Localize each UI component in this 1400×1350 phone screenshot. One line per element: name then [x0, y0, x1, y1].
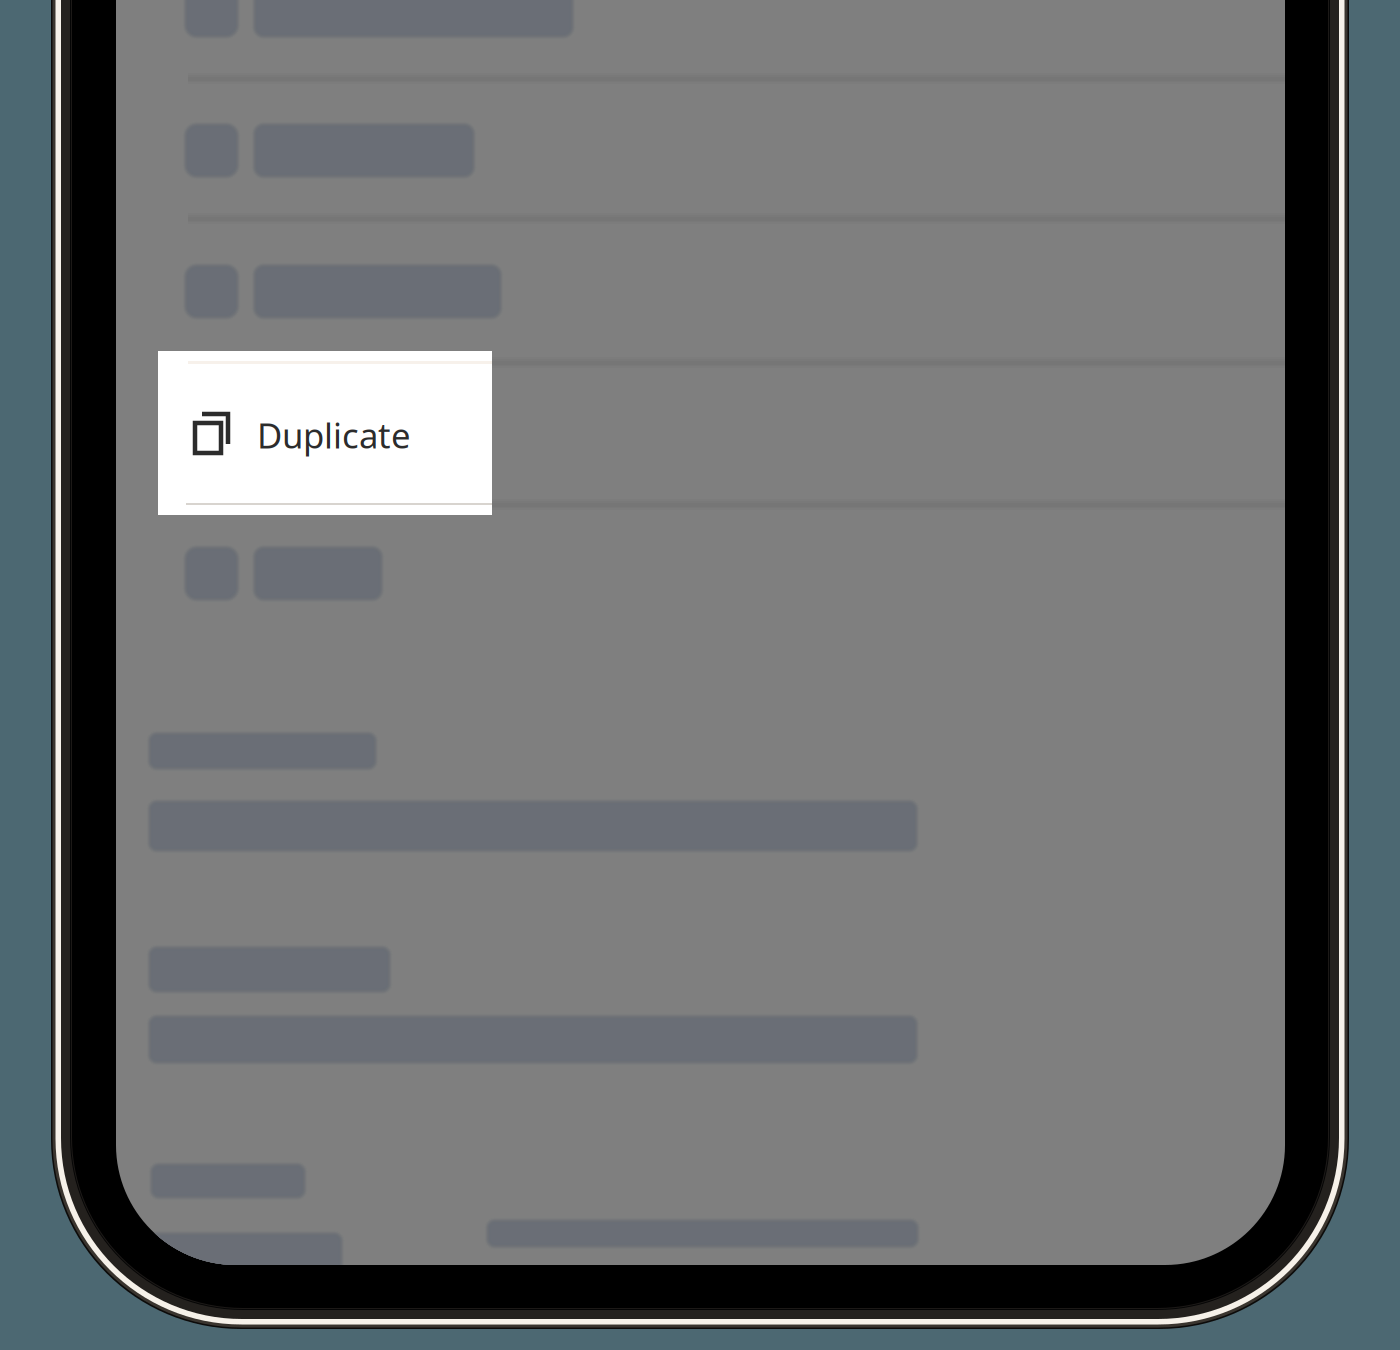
button[interactable]: List item 4 [116, 0, 1285, 1265]
button[interactable]: List item 3 [116, 0, 1285, 1265]
button[interactable]: List item 2 [116, 0, 1285, 1265]
button[interactable]: List item 1 [116, 0, 1285, 1265]
staticText: Duplicate [257, 412, 411, 458]
button[interactable]: Duplicate [0, 0, 1400, 1350]
